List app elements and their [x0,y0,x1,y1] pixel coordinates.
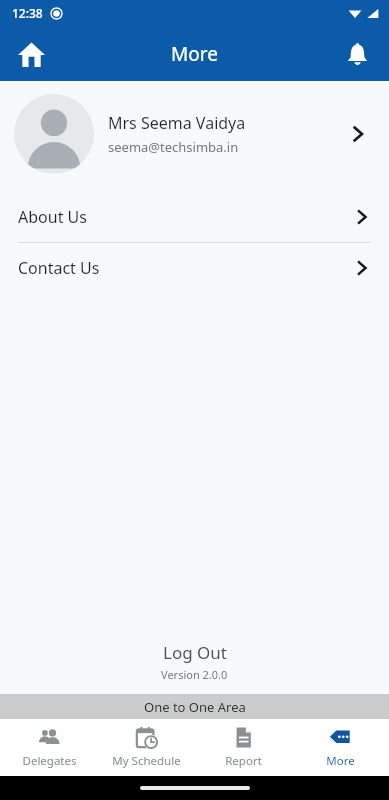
button[interactable]: One to One Area [0,694,389,719]
staticText: Mrs Seema Vaidya [108,112,246,134]
staticText: More [171,41,218,67]
staticText: 12:38 [12,5,43,21]
staticText: Contact Us [18,257,353,279]
staticText: seema@techsimba.in [108,138,239,156]
staticText: Report [225,753,262,769]
staticText: Delegates [22,753,77,769]
staticText: Log Out [163,641,227,664]
button[interactable]: Delegates [0,720,98,775]
button[interactable]: Report [195,720,292,775]
staticText: My Schedule [112,753,181,769]
button[interactable]: More [292,720,389,775]
staticText: Version 2.0.0 [161,667,228,682]
staticText: More [326,753,355,769]
button[interactable]: Contact Us [0,243,389,293]
button[interactable]: Log Out [145,638,245,667]
staticText: One to One Area [144,698,246,716]
button[interactable]: Home [8,31,54,77]
staticText: About Us [18,206,353,228]
button[interactable]: About Us [0,192,389,242]
button[interactable]: Notifications [335,32,379,76]
button[interactable]: My Schedule [98,720,195,775]
button[interactable]: Mrs Seema Vaidya [0,81,389,186]
